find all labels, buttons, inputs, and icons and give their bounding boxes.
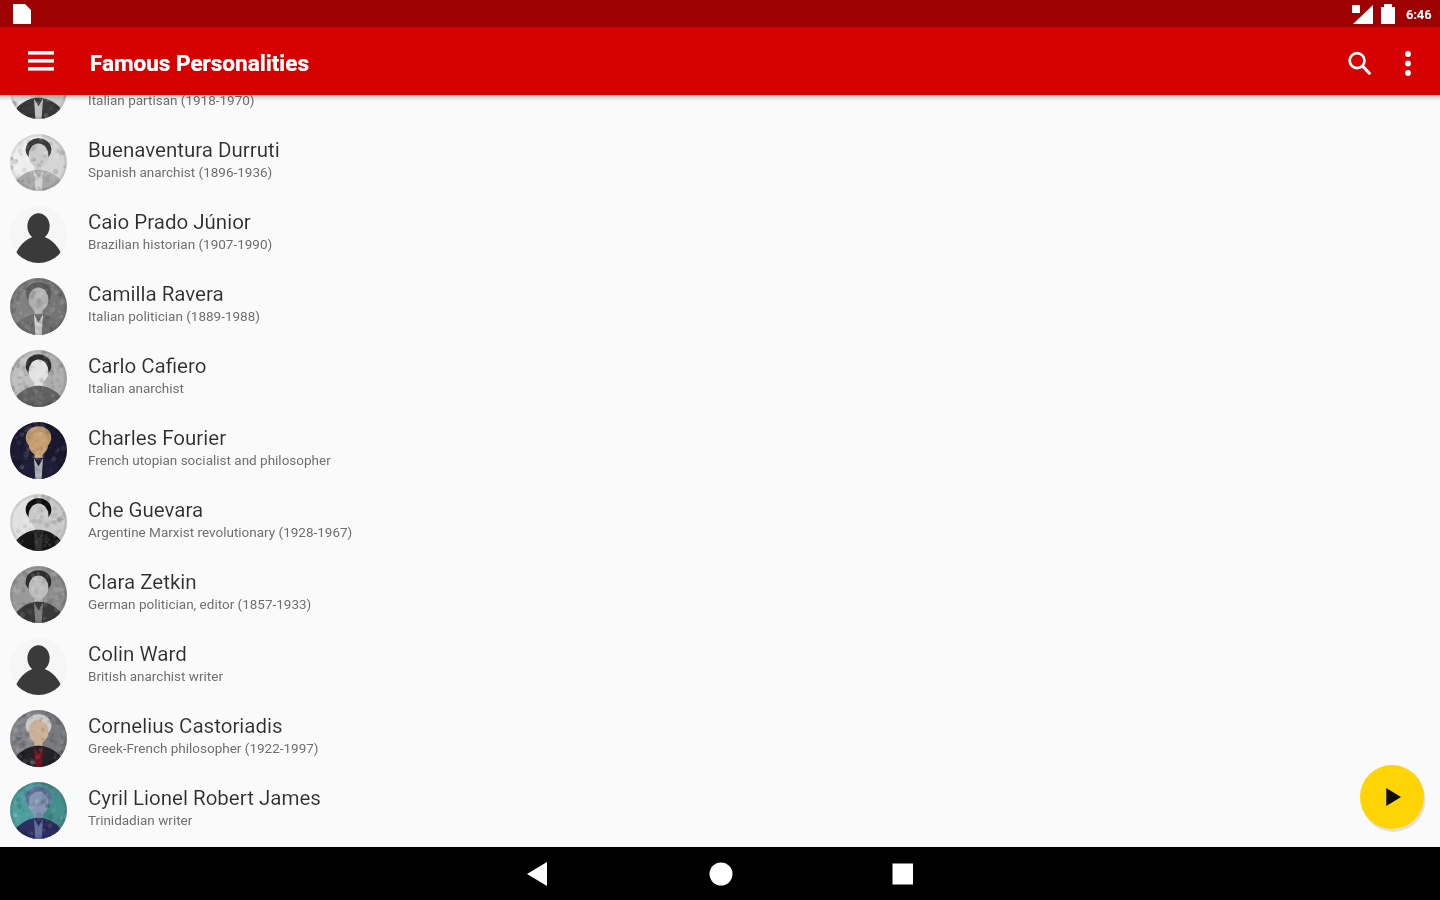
staticText: Famous Personalities: [90, 50, 309, 76]
button[interactable]: Clara Zetkin: [0, 558, 1440, 630]
staticText: Spanish anarchist (1896-1936): [88, 164, 273, 180]
staticText: Caio Prado Júnior: [88, 210, 251, 234]
button[interactable]: Buenaventura Durruti: [0, 126, 1440, 198]
staticText: Italian politician (1889-1988): [88, 308, 260, 324]
button[interactable]: Caio Prado Júnior: [0, 198, 1440, 270]
button[interactable]: Carlo Cafiero: [0, 342, 1440, 414]
staticText: Italian partisan (1918-1970): [88, 95, 255, 108]
button[interactable]: Play: [1360, 765, 1424, 829]
staticText: Trinidadian writer: [88, 812, 193, 828]
staticText: French utopian socialist and philosopher: [88, 452, 331, 468]
button[interactable]: Recent apps: [859, 847, 949, 900]
staticText: Italian anarchist: [88, 380, 184, 396]
button[interactable]: Cornelius Castoriadis: [0, 702, 1440, 774]
button[interactable]: Back: [494, 847, 584, 900]
button[interactable]: Camilla Ravera: [0, 270, 1440, 342]
staticText: 6:46: [1406, 7, 1432, 22]
staticText: Charles Fourier: [88, 426, 227, 450]
button[interactable]: Charles Fourier: [0, 414, 1440, 486]
staticText: British anarchist writer: [88, 668, 223, 684]
button[interactable]: Giovanni Pesce: [0, 95, 1440, 126]
button[interactable]: Open navigation drawer: [17, 37, 65, 85]
staticText: Carlo Cafiero: [88, 354, 207, 378]
staticText: Colin Ward: [88, 642, 187, 666]
button[interactable]: Home: [677, 847, 767, 900]
staticText: Clara Zetkin: [88, 570, 197, 594]
staticText: Cornelius Castoriadis: [88, 714, 283, 738]
button[interactable]: Search: [1330, 34, 1384, 88]
staticText: Argentine Marxist revolutionary (1928-19…: [88, 524, 353, 540]
staticText: Che Guevara: [88, 498, 204, 522]
button[interactable]: More options: [1384, 34, 1438, 88]
staticText: Greek-French philosopher (1922-1997): [88, 740, 319, 756]
button[interactable]: Cyril Lionel Robert James: [0, 774, 1440, 846]
staticText: Buenaventura Durruti: [88, 138, 280, 162]
button[interactable]: Colin Ward: [0, 630, 1440, 702]
staticText: Cyril Lionel Robert James: [88, 786, 321, 810]
staticText: Brazilian historian (1907-1990): [88, 236, 273, 252]
staticText: Camilla Ravera: [88, 282, 224, 306]
button[interactable]: Che Guevara: [0, 486, 1440, 558]
staticText: German politician, editor (1857-1933): [88, 596, 312, 612]
